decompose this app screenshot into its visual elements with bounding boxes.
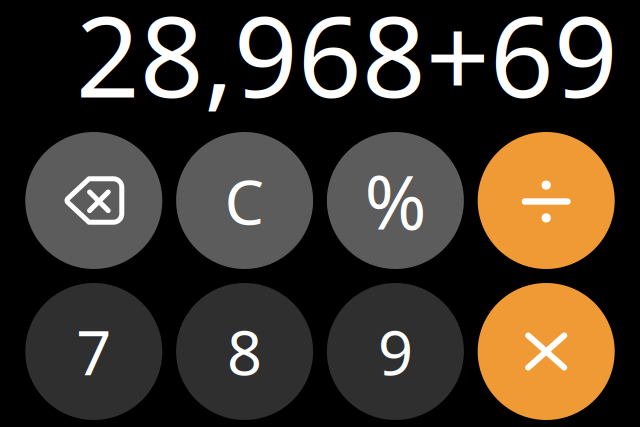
- staticText: 7: [76, 311, 111, 392]
- staticText: 28,968+69: [76, 0, 618, 128]
- staticText: 9: [378, 311, 413, 392]
- staticText: C: [225, 159, 265, 242]
- button[interactable]: 8: [176, 283, 313, 420]
- button[interactable]: Divide: [478, 132, 615, 269]
- staticText: 8: [227, 311, 262, 392]
- button[interactable]: Delete: [25, 132, 162, 269]
- button[interactable]: 9: [327, 283, 464, 420]
- button[interactable]: %: [327, 132, 464, 269]
- button[interactable]: C: [176, 132, 313, 269]
- button[interactable]: Multiply: [478, 283, 615, 420]
- staticText: %: [364, 151, 426, 250]
- button[interactable]: 7: [25, 283, 162, 420]
